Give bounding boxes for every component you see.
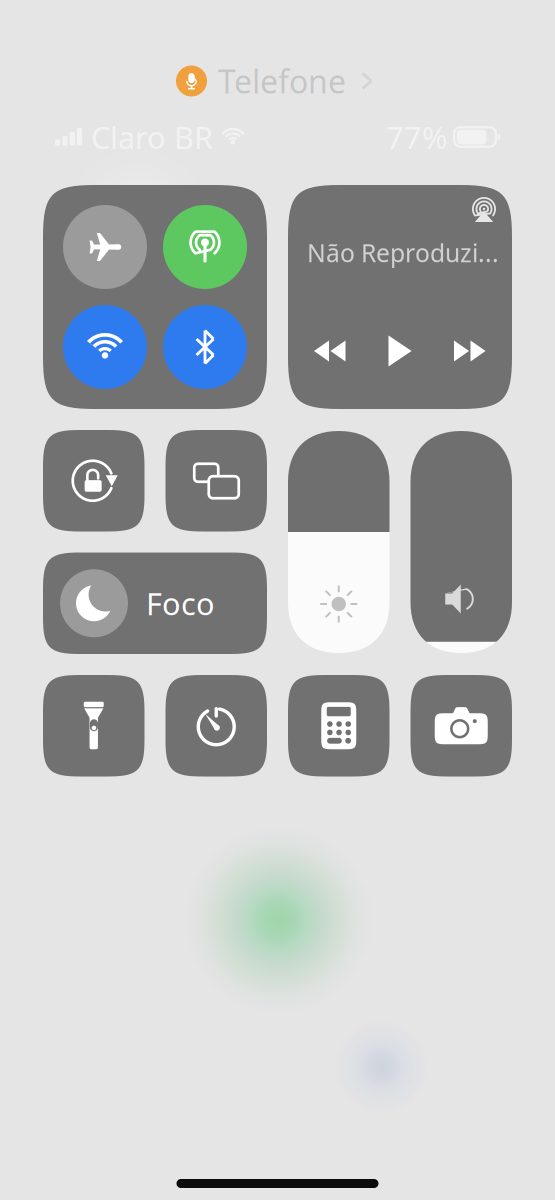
- button[interactable]: Cellular Data: [163, 205, 247, 289]
- button[interactable]: Flashlight: [43, 675, 144, 776]
- button[interactable]: Camera: [410, 675, 512, 776]
- button[interactable]: Calculator: [288, 675, 389, 776]
- button[interactable]: Timer: [165, 675, 267, 776]
- button[interactable]: Brightness: [288, 431, 389, 653]
- staticText: Claro BR: [91, 116, 213, 158]
- button[interactable]: Bluetooth: [163, 305, 247, 389]
- button[interactable]: Play: [387, 335, 413, 367]
- button[interactable]: Airplane Mode: [63, 205, 147, 289]
- button[interactable]: Previous Track: [314, 339, 346, 362]
- button[interactable]: Rotation Lock: [43, 430, 144, 531]
- button[interactable]: Telefone: [176, 64, 379, 98]
- staticText: Foco: [146, 582, 215, 624]
- button[interactable]: Next Track: [454, 339, 486, 362]
- staticText: Não Reproduzi...: [307, 236, 499, 270]
- staticText: 77%: [386, 116, 447, 158]
- button[interactable]: Wi-Fi: [63, 305, 147, 389]
- button[interactable]: AirPlay: [470, 196, 498, 224]
- staticText: Telefone: [218, 59, 346, 103]
- button[interactable]: Screen Mirroring: [165, 430, 267, 531]
- button[interactable]: Focus: [43, 552, 267, 654]
- button[interactable]: Volume: [410, 431, 512, 653]
